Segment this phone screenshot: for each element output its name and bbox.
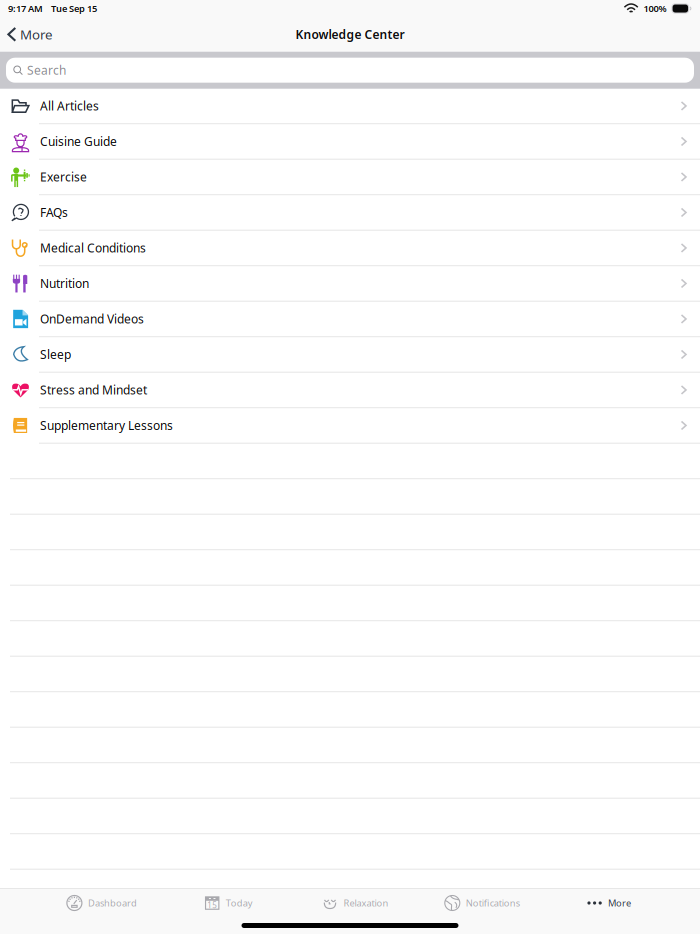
- button[interactable]: Notifications: [418, 889, 545, 917]
- button[interactable]: All Articles: [0, 89, 700, 124]
- button[interactable]: Exercise: [0, 160, 700, 195]
- button[interactable]: Relaxation: [292, 889, 418, 917]
- staticText: FAQs: [40, 204, 68, 220]
- staticText: Notifications: [466, 897, 520, 909]
- button[interactable]: Stress and Mindset: [0, 373, 700, 408]
- staticText: Dashboard: [88, 897, 137, 909]
- staticText: Sleep: [40, 346, 71, 362]
- staticText: Search: [27, 62, 66, 78]
- button[interactable]: FAQs: [0, 195, 700, 231]
- staticText: 15: [207, 900, 217, 910]
- staticText: Today: [226, 897, 253, 909]
- staticText: Relaxation: [343, 897, 388, 909]
- staticText: Supplementary Lessons: [40, 417, 173, 433]
- button[interactable]: Sleep: [0, 337, 700, 373]
- button[interactable]: Cuisine Guide: [0, 124, 700, 160]
- staticText: Stress and Mindset: [40, 382, 147, 398]
- button[interactable]: Nutrition: [0, 266, 700, 302]
- button[interactable]: More: [545, 889, 672, 917]
- button[interactable]: Supplementary Lessons: [0, 408, 700, 444]
- staticText: All Articles: [40, 98, 99, 114]
- staticText: Knowledge Center: [295, 26, 404, 42]
- staticText: OnDemand Videos: [40, 311, 144, 327]
- staticText: 9:17 AM: [8, 2, 43, 15]
- staticText: More: [20, 25, 53, 43]
- staticText: 100%: [644, 2, 667, 15]
- button[interactable]: OnDemand Videos: [0, 302, 700, 337]
- button[interactable]: Dashboard: [38, 889, 165, 917]
- button[interactable]: 15: [165, 889, 292, 917]
- staticText: Tue Sep 15: [51, 2, 97, 15]
- staticText: Nutrition: [40, 275, 89, 291]
- staticText: Medical Conditions: [40, 240, 146, 256]
- button[interactable]: More: [0, 19, 61, 49]
- staticText: Exercise: [40, 169, 87, 185]
- button[interactable]: Medical Conditions: [0, 231, 700, 266]
- staticText: More: [608, 897, 631, 909]
- staticText: Cuisine Guide: [40, 133, 117, 149]
